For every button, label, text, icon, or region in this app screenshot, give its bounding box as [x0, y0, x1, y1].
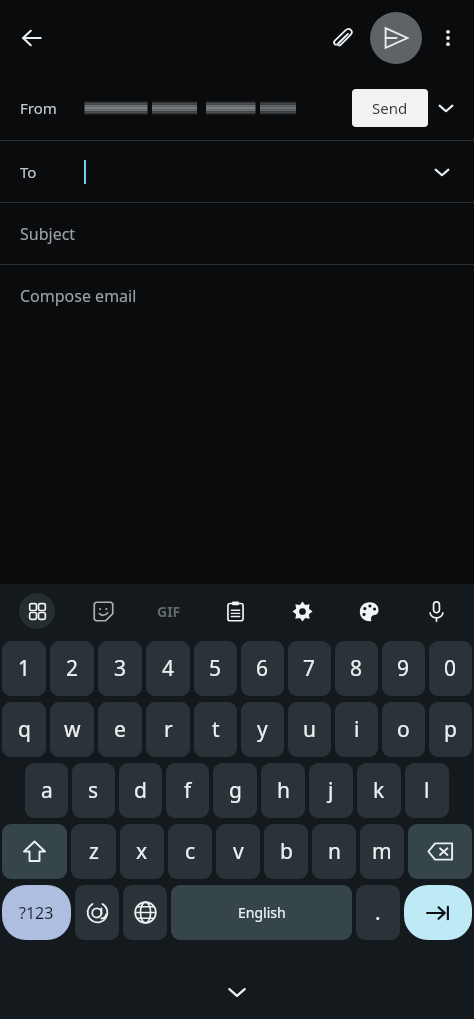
button[interactable]: Settings — [269, 584, 336, 638]
button[interactable]: i — [335, 702, 378, 757]
staticText: . — [375, 898, 381, 927]
staticText: 3 — [114, 654, 127, 683]
button[interactable]: 7 — [288, 641, 331, 696]
staticText: u — [303, 715, 316, 744]
staticText: y — [257, 715, 268, 744]
staticText: j — [328, 776, 334, 805]
button[interactable]: p — [429, 702, 472, 757]
staticText: h — [277, 776, 290, 805]
button[interactable]: ?123 — [2, 885, 71, 940]
staticText: English — [238, 903, 286, 922]
staticText: Subject — [20, 223, 76, 245]
button[interactable]: e — [98, 702, 142, 757]
button[interactable]: Change language — [123, 885, 167, 940]
button[interactable]: g — [213, 763, 257, 818]
button[interactable]: Subject — [0, 203, 474, 264]
button[interactable]: a — [25, 763, 68, 818]
staticText: o — [397, 715, 410, 744]
button[interactable]: t — [194, 702, 237, 757]
button[interactable]: 0 — [429, 641, 472, 696]
staticText: Compose email — [20, 285, 137, 307]
staticText: v — [233, 837, 244, 866]
button[interactable]: 6 — [241, 641, 284, 696]
button[interactable]: More options — [426, 16, 470, 60]
button[interactable]: w — [50, 702, 94, 757]
button[interactable]: y — [241, 702, 284, 757]
button[interactable]: Stickers — [70, 584, 136, 638]
staticText: g — [229, 776, 242, 805]
staticText: Send — [372, 98, 408, 118]
button[interactable]: Backspace — [408, 824, 472, 879]
staticText: k — [373, 776, 385, 805]
button[interactable]: j — [309, 763, 353, 818]
button[interactable]: z — [71, 824, 116, 879]
button[interactable]: l — [405, 763, 449, 818]
button[interactable]: 1 — [2, 641, 46, 696]
staticText: w — [64, 715, 81, 744]
button[interactable]: u — [288, 702, 331, 757]
button[interactable]: c — [168, 824, 212, 879]
staticText: z — [89, 837, 99, 866]
button[interactable]: f — [166, 763, 209, 818]
button[interactable]: m — [360, 824, 404, 879]
staticText: ?123 — [19, 902, 54, 924]
button[interactable]: 3 — [98, 641, 142, 696]
staticText: t — [212, 715, 220, 744]
staticText: To — [20, 162, 37, 182]
button[interactable]: d — [119, 763, 162, 818]
button[interactable]: Enter — [404, 885, 472, 940]
staticText: 2 — [66, 654, 79, 683]
button[interactable]: 8 — [335, 641, 378, 696]
staticText: n — [328, 837, 341, 866]
staticText: l — [424, 776, 430, 805]
staticText: e — [114, 715, 126, 744]
button[interactable]: Expand recipients — [424, 154, 460, 190]
button[interactable]: o — [382, 702, 425, 757]
button[interactable]: 9 — [382, 641, 425, 696]
staticText: i — [354, 715, 360, 744]
button[interactable]: Themes — [336, 584, 403, 638]
staticText: b — [280, 837, 293, 866]
button[interactable]: Clipboard — [202, 584, 269, 638]
button[interactable]: b — [264, 824, 308, 879]
staticText: q — [18, 715, 31, 744]
staticText: 4 — [162, 654, 175, 683]
staticText: GIF — [157, 602, 181, 621]
button[interactable]: Send — [370, 12, 422, 64]
button[interactable]: Voice input — [403, 584, 470, 638]
button[interactable]: English — [171, 885, 352, 940]
staticText: s — [88, 776, 99, 805]
button[interactable]: v — [216, 824, 260, 879]
button[interactable]: 2 — [50, 641, 94, 696]
staticText: a — [41, 776, 53, 805]
staticText: m — [372, 837, 392, 866]
staticText: 1 — [18, 654, 31, 683]
button[interactable]: Attach file — [320, 16, 364, 60]
button[interactable]: r — [146, 702, 190, 757]
staticText: f — [184, 776, 192, 805]
button[interactable]: n — [312, 824, 356, 879]
staticText: x — [136, 837, 148, 866]
button[interactable]: . — [356, 885, 400, 940]
button[interactable]: GIF — [136, 584, 202, 638]
button[interactable]: Hide keyboard — [216, 971, 258, 1013]
button[interactable]: Apps — [4, 584, 70, 638]
staticText: 0 — [444, 654, 457, 683]
button[interactable]: Send — [352, 89, 428, 127]
button[interactable]: Compose email — [0, 265, 474, 326]
button[interactable]: Expand from — [428, 90, 464, 126]
staticText: r — [164, 715, 173, 744]
staticText: From — [20, 98, 57, 118]
staticText: 6 — [256, 654, 269, 683]
button[interactable]: q — [2, 702, 46, 757]
button[interactable]: 5 — [194, 641, 237, 696]
button[interactable]: s — [72, 763, 115, 818]
button[interactable]: 4 — [146, 641, 190, 696]
button[interactable]: h — [261, 763, 305, 818]
button[interactable]: Shift — [2, 824, 67, 879]
button[interactable]: Back — [8, 14, 56, 62]
staticText: 8 — [350, 654, 363, 683]
button[interactable]: x — [120, 824, 164, 879]
button[interactable]: At sign — [75, 885, 119, 940]
button[interactable]: k — [357, 763, 401, 818]
